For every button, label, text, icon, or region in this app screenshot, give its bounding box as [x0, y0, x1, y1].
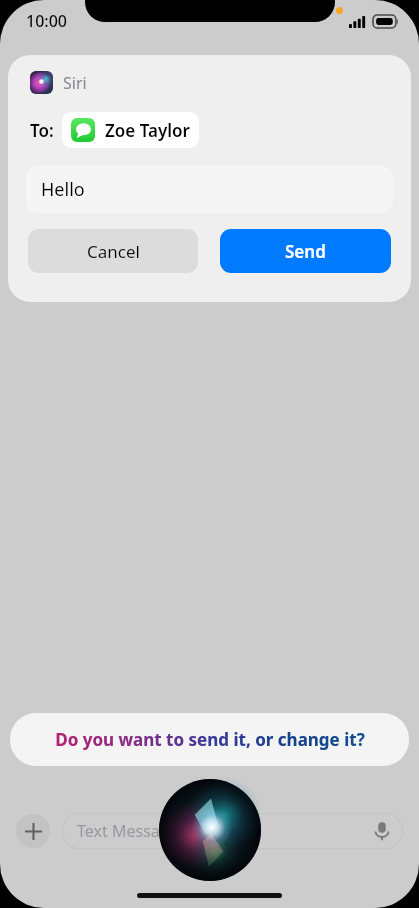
button[interactable]: Add attachment: [16, 814, 50, 848]
button[interactable]: Zoe Taylor: [62, 112, 199, 148]
staticText: 10:00: [26, 10, 67, 32]
button[interactable]: Text Message: [62, 813, 403, 849]
staticText: To:: [30, 119, 54, 142]
button[interactable]: Do you want to send it, or change it?: [10, 713, 409, 766]
staticText: Do you want to send it, or change it?: [55, 728, 365, 751]
button[interactable]: Dictate: [371, 820, 393, 842]
button[interactable]: Hello: [26, 166, 393, 213]
staticText: Hello: [41, 177, 85, 202]
staticText: Siri: [63, 72, 87, 94]
staticText: Zoe Taylor: [105, 119, 190, 142]
staticText: Cancel: [87, 240, 140, 263]
staticText: Send: [285, 240, 326, 263]
button[interactable]: Siri: [159, 779, 261, 881]
button[interactable]: Send: [220, 229, 391, 273]
button[interactable]: Cancel: [28, 229, 198, 273]
staticText: Text Message: [77, 820, 179, 842]
